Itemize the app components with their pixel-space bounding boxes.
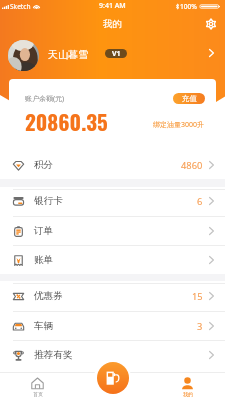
button[interactable]: 我的	[150, 372, 225, 400]
staticText: V1	[112, 49, 121, 58]
staticText: 推荐有奖	[34, 349, 73, 361]
button[interactable]: 优惠券	[0, 282, 225, 310]
staticText: 我的	[183, 391, 193, 397]
staticText: 银行卡	[34, 195, 63, 207]
staticText: Sketch	[10, 2, 31, 11]
staticText: 账单	[34, 254, 54, 266]
staticText: 首页	[33, 391, 43, 397]
button[interactable]: Settings	[203, 16, 219, 32]
staticText: 4860	[181, 159, 203, 172]
staticText: 20860.35	[25, 106, 108, 137]
button[interactable]: 推荐有奖	[0, 341, 225, 369]
staticText: 100%	[180, 2, 197, 11]
button[interactable]: 首页	[0, 372, 75, 400]
button[interactable]: 订单	[0, 217, 225, 245]
button[interactable]: Refuel	[97, 362, 129, 394]
staticText: 6	[197, 195, 203, 208]
button[interactable]: 天山暮雪	[0, 35, 225, 77]
staticText: 我的	[103, 18, 122, 30]
staticText: 15	[192, 290, 203, 303]
staticText: 9:41 AM	[99, 1, 126, 11]
staticText: 3	[197, 320, 203, 333]
staticText: 账户余额(元)	[25, 94, 65, 104]
button[interactable]: 银行卡	[0, 187, 225, 215]
staticText: 优惠券	[34, 290, 63, 302]
staticText: 天山暮雪	[48, 48, 88, 61]
button[interactable]: 账单	[0, 246, 225, 274]
staticText: 积分	[34, 159, 54, 171]
button[interactable]: 积分	[0, 151, 225, 179]
staticText: 充值	[182, 94, 197, 103]
staticText: 订单	[34, 225, 54, 237]
button[interactable]: 充值	[173, 93, 205, 104]
staticText: 绑定油量3000升	[153, 120, 205, 130]
staticText: 车辆	[34, 320, 54, 332]
button[interactable]: 车辆	[0, 312, 225, 340]
